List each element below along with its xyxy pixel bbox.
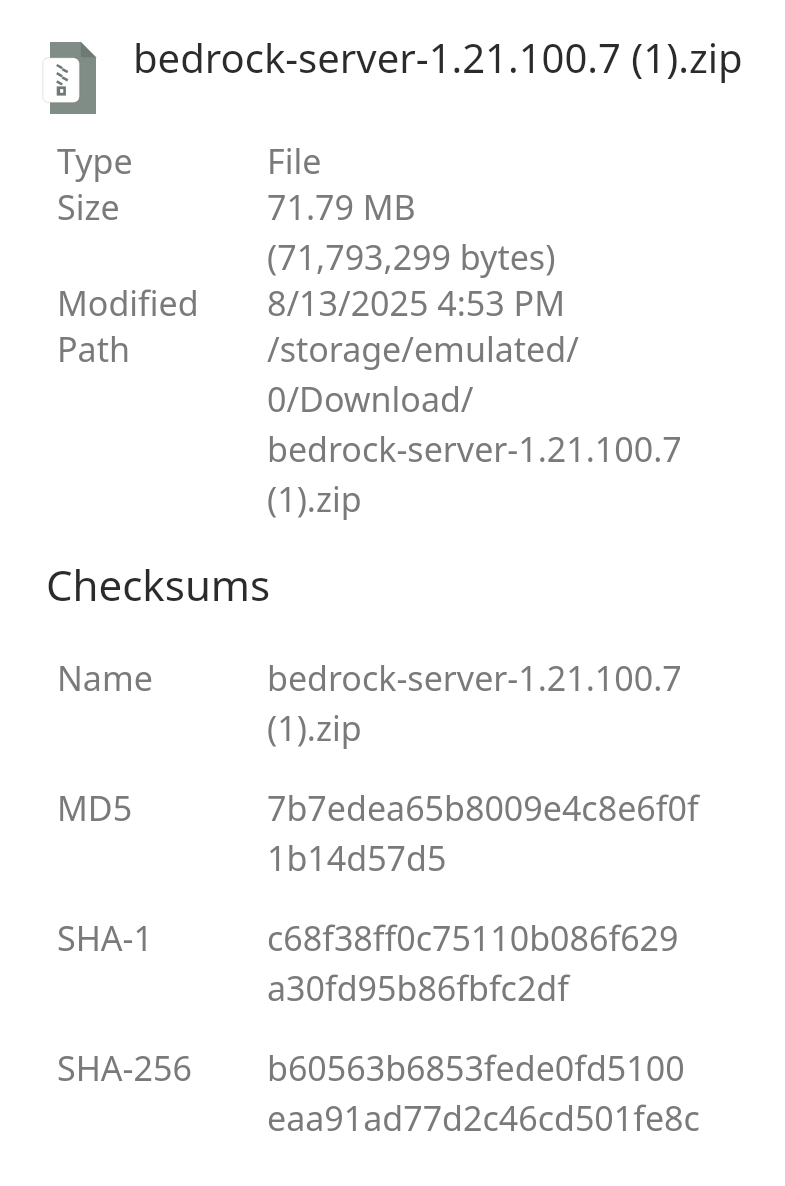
staticText: 7b7edea65b8009e4c8e6f0f 1b14d57d5 bbox=[267, 785, 699, 881]
staticText: Checksums bbox=[46, 556, 271, 613]
button[interactable]: SHA-256 bbox=[0, 1045, 785, 1186]
staticText: 8/13/2025 4:53 PM bbox=[267, 280, 565, 326]
staticText: SHA-1 bbox=[57, 915, 267, 961]
staticText: bedrock-server-1.21.100.7 (1).zip bbox=[133, 30, 743, 84]
staticText: /storage/emulated/ 0/Download/ bedrock-s… bbox=[267, 326, 682, 522]
button[interactable]: MD5 bbox=[0, 785, 785, 915]
staticText: Size bbox=[57, 184, 267, 230]
button[interactable]: Name bbox=[0, 655, 785, 785]
staticText: b60563b6853fede0fd5100 eaa91ad77d2c46cd5… bbox=[267, 1045, 700, 1152]
staticText: bedrock-server-1.21.100.7 (1).zip bbox=[267, 655, 682, 751]
staticText: Name bbox=[57, 655, 267, 701]
button[interactable]: Zip file bbox=[0, 0, 785, 114]
button[interactable]: Path bbox=[0, 326, 785, 522]
staticText: Path bbox=[57, 326, 267, 372]
button[interactable]: Type bbox=[0, 138, 785, 184]
staticText: MD5 bbox=[57, 785, 267, 831]
staticText: 71.79 MB (71,793,299 bytes) bbox=[267, 184, 556, 280]
staticText: Modified bbox=[57, 280, 267, 326]
button[interactable]: Size bbox=[0, 184, 785, 280]
staticText: Type bbox=[57, 138, 267, 184]
other: Zip file bbox=[50, 42, 96, 114]
staticText: c68f38ff0c75110b086f629 a30fd95b86fbfc2d… bbox=[267, 915, 679, 1011]
staticText: File bbox=[267, 138, 322, 184]
button[interactable]: SHA-1 bbox=[0, 915, 785, 1045]
button[interactable]: Modified bbox=[0, 280, 785, 326]
staticText: SHA-256 bbox=[57, 1045, 267, 1091]
